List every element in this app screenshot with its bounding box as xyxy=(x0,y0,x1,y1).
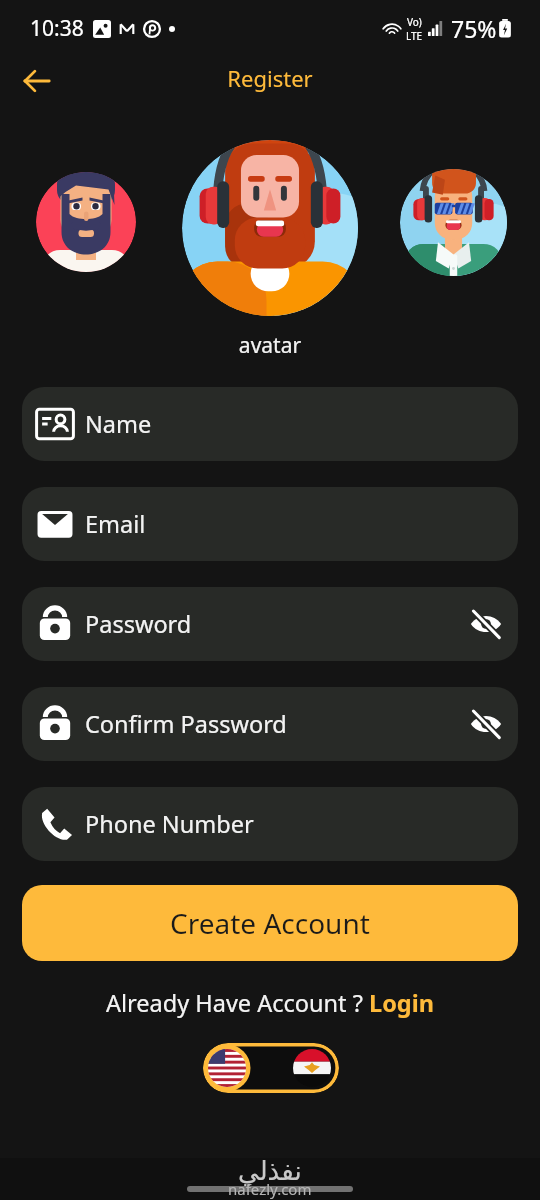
staticText: Already Have Account ? xyxy=(106,987,369,1019)
staticText: Name xyxy=(85,408,152,440)
button[interactable]: Login xyxy=(369,987,434,1019)
staticText: avatar xyxy=(0,331,540,360)
staticText: Vo) xyxy=(407,15,422,29)
button[interactable]: Change language xyxy=(203,1043,339,1093)
staticText: nafezly.com xyxy=(228,1179,312,1199)
staticText: Login xyxy=(369,987,434,1019)
staticText: نفذلي xyxy=(238,1156,302,1186)
staticText: Email xyxy=(85,508,146,540)
button[interactable]: Back xyxy=(17,61,57,101)
staticText: Phone Number xyxy=(85,808,254,840)
staticText: 10:38 xyxy=(30,14,84,43)
staticText: LTE xyxy=(406,29,423,43)
button[interactable]: Create Account xyxy=(22,885,518,961)
button[interactable]: Avatar option 3 xyxy=(400,169,507,276)
button[interactable]: Password xyxy=(22,587,518,661)
staticText: Confirm Password xyxy=(85,708,287,740)
button[interactable]: Avatar option 1 xyxy=(36,172,136,272)
button[interactable]: Selected avatar xyxy=(182,140,358,316)
staticText: Register xyxy=(0,63,540,93)
staticText: Create Account xyxy=(170,904,370,942)
button[interactable]: Confirm Password xyxy=(22,687,518,761)
button[interactable]: Phone Number xyxy=(22,787,518,861)
staticText: Password xyxy=(85,608,192,640)
button[interactable]: Show password xyxy=(468,706,504,742)
staticText: 75% xyxy=(451,13,497,44)
button[interactable]: Show password xyxy=(468,606,504,642)
button[interactable]: Name xyxy=(22,387,518,461)
button[interactable]: Email xyxy=(22,487,518,561)
